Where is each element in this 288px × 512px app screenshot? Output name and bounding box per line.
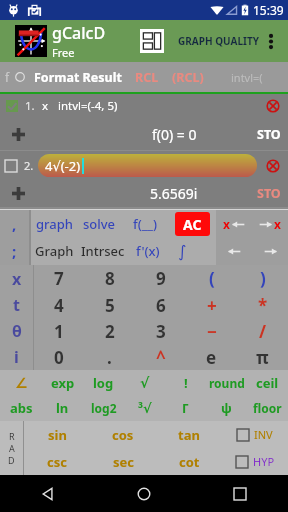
button[interactable]: Home — [96, 475, 192, 512]
button[interactable]: ! — [165, 370, 206, 395]
button[interactable]: STO — [257, 185, 281, 202]
staticText: 4 — [54, 294, 64, 317]
button[interactable]: 0 — [34, 344, 84, 370]
button[interactable]: log — [83, 370, 124, 395]
button[interactable]: ( — [186, 265, 237, 292]
button[interactable]: t — [0, 292, 33, 318]
button[interactable]: Intrsec — [77, 237, 129, 265]
button[interactable]: 1. — [0, 94, 288, 118]
staticText: 7 — [54, 267, 64, 290]
staticText: ceil — [256, 374, 279, 392]
button[interactable]: x — [0, 265, 33, 292]
button[interactable]: Graph layout — [139, 28, 165, 54]
button[interactable]: 3 — [135, 318, 186, 344]
button[interactable]: i — [0, 344, 33, 370]
button[interactable]: Toggle f — [15, 72, 25, 82]
button[interactable]: Graph — [31, 237, 77, 265]
button[interactable]: sec — [90, 448, 156, 475]
staticText: f — [5, 69, 10, 85]
button[interactable]: Γ — [165, 395, 206, 421]
button[interactable]: 9 — [135, 265, 186, 292]
button[interactable]: 7 — [34, 265, 84, 292]
button[interactable]: − — [186, 318, 237, 344]
staticText: 1. — [25, 98, 35, 114]
button[interactable]: 4 — [34, 292, 84, 318]
button[interactable]: √ — [124, 370, 165, 395]
button[interactable]: . — [84, 344, 135, 370]
button[interactable]: ∠ — [0, 370, 42, 395]
button[interactable]: + — [186, 292, 237, 318]
button[interactable]: * — [237, 292, 288, 318]
button[interactable]: 6 — [135, 292, 186, 318]
button[interactable]: floor — [247, 395, 288, 421]
button[interactable]: cot — [156, 448, 222, 475]
button[interactable]: 5 — [84, 292, 135, 318]
button[interactable]: GRAPH QUALITY — [178, 34, 259, 48]
button[interactable]: 8 — [84, 265, 135, 292]
button[interactable]: STO — [257, 126, 281, 143]
button[interactable]: ψ — [206, 395, 247, 421]
button[interactable]: log2 — [83, 395, 124, 421]
button[interactable]: exp — [42, 370, 83, 395]
button[interactable]: ³√ — [124, 395, 165, 421]
button[interactable]: Move right — [252, 237, 288, 265]
button[interactable]: , — [0, 210, 29, 237]
button[interactable]: π — [237, 344, 288, 370]
button[interactable]: solve — [77, 210, 121, 237]
staticText: ψ — [221, 399, 232, 417]
button[interactable]: / — [237, 318, 288, 344]
button[interactable]: Recent apps — [192, 475, 288, 512]
button[interactable]: More options — [259, 29, 283, 53]
button[interactable]: Delete right — [252, 210, 288, 237]
button[interactable]: Delete — [266, 159, 280, 173]
button[interactable]: 4√(-2) — [38, 154, 257, 177]
button[interactable]: AC — [175, 212, 210, 236]
button[interactable]: graph — [31, 210, 77, 237]
button[interactable]: Add expression — [12, 128, 25, 141]
staticText: sec — [113, 453, 134, 471]
button[interactable]: round — [206, 370, 247, 395]
staticText: 0 — [54, 346, 64, 369]
button[interactable]: Delete — [266, 99, 280, 113]
button[interactable]: (RCL) — [172, 69, 204, 86]
button[interactable]: cos — [90, 421, 156, 448]
staticText: ∠ — [15, 375, 28, 391]
button[interactable]: ^ — [135, 344, 186, 370]
button[interactable]: ) — [237, 265, 288, 292]
button[interactable]: Move left — [216, 237, 252, 265]
staticText: x — [274, 216, 281, 232]
staticText: √ — [140, 375, 150, 391]
button[interactable]: gCalcD — [52, 22, 106, 60]
button[interactable]: ∫ — [167, 237, 197, 265]
staticText: e — [206, 346, 217, 369]
staticText: STO — [257, 126, 281, 143]
button[interactable]: f'(x) — [129, 237, 167, 265]
button[interactable]: Delete left — [216, 210, 252, 237]
staticText: x — [223, 216, 230, 232]
button[interactable]: f(__) — [121, 210, 169, 237]
button[interactable]: Back — [0, 475, 96, 512]
button[interactable]: Format Result — [34, 69, 122, 86]
button[interactable]: abs — [0, 395, 42, 421]
button[interactable]: θ — [0, 318, 33, 344]
button[interactable]: ; — [0, 237, 29, 265]
staticText: exp — [51, 374, 75, 392]
staticText: Graph — [35, 242, 74, 260]
button[interactable]: csc — [24, 448, 90, 475]
button[interactable]: ln — [42, 395, 83, 421]
staticText: π — [256, 346, 269, 369]
button[interactable]: HYP — [222, 448, 288, 475]
button[interactable]: Add expression — [12, 187, 25, 200]
button[interactable]: 1 — [34, 318, 84, 344]
button[interactable]: 2 — [84, 318, 135, 344]
button[interactable]: Enable expression 2 — [5, 160, 17, 172]
button[interactable]: sin — [24, 421, 90, 448]
staticText: t — [13, 294, 20, 316]
staticText: GRAPH QUALITY — [178, 34, 259, 48]
button[interactable]: ceil — [247, 370, 288, 395]
button[interactable]: INV — [222, 421, 288, 448]
button[interactable]: RCL — [135, 69, 159, 86]
staticText: graph — [36, 215, 73, 233]
button[interactable]: e — [186, 344, 237, 370]
button[interactable]: tan — [156, 421, 222, 448]
